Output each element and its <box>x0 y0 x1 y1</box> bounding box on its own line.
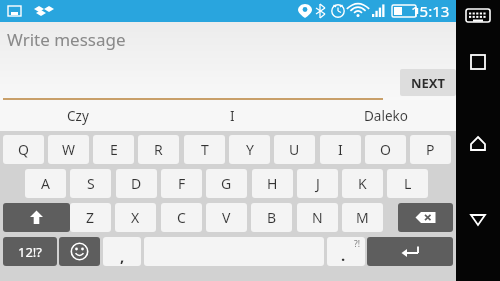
staticText: I <box>230 107 235 125</box>
button[interactable]: P <box>410 135 451 164</box>
staticText: I <box>338 140 343 159</box>
button[interactable]: R <box>138 135 179 164</box>
button[interactable]: G <box>206 169 247 198</box>
staticText: S <box>87 174 95 193</box>
button[interactable]: ?! <box>327 237 365 266</box>
staticText: Y <box>246 140 254 159</box>
staticText: N <box>312 208 323 227</box>
staticText: V <box>222 208 231 227</box>
staticText: X <box>131 208 140 227</box>
button[interactable]: X <box>115 203 156 232</box>
staticText: P <box>426 140 435 159</box>
button[interactable]: Y <box>229 135 270 164</box>
button[interactable]: Z <box>70 203 111 232</box>
button[interactable]: E <box>93 135 134 164</box>
staticText: . <box>341 245 346 265</box>
staticText: 15:13 <box>411 1 450 21</box>
staticText: U <box>289 140 300 159</box>
staticText: M <box>356 208 369 227</box>
button[interactable]: B <box>251 203 292 232</box>
staticText: , <box>120 246 125 266</box>
button[interactable]: U <box>274 135 315 164</box>
staticText: Q <box>18 140 29 159</box>
button[interactable]: H <box>252 169 293 198</box>
button[interactable]: Write message <box>0 22 456 100</box>
button[interactable]: Keyboard <box>463 6 493 28</box>
staticText: Czy <box>67 107 89 125</box>
staticText: W <box>62 140 76 159</box>
staticText: G <box>221 174 232 193</box>
staticText: E <box>110 140 118 159</box>
button[interactable]: S <box>70 169 111 198</box>
button[interactable]: Home <box>466 132 490 156</box>
staticText: R <box>154 140 163 159</box>
button[interactable]: M <box>342 203 383 232</box>
staticText: T <box>201 140 209 159</box>
button[interactable]: A <box>25 169 66 198</box>
staticText: Write message <box>7 28 126 51</box>
staticText: ?! <box>354 238 360 250</box>
button[interactable]: Q <box>3 135 44 164</box>
staticText: Daleko <box>364 107 408 125</box>
button[interactable]: Recents <box>467 51 489 73</box>
button[interactable]: C <box>161 203 202 232</box>
button[interactable]: O <box>365 135 406 164</box>
button[interactable]: 12!? <box>3 237 57 266</box>
button[interactable]: N <box>297 203 338 232</box>
button[interactable]: Backspace <box>398 203 453 232</box>
staticText: Z <box>86 208 95 227</box>
staticText: NEXT <box>411 74 446 92</box>
button[interactable]: Emoji <box>59 237 100 266</box>
button[interactable]: F <box>161 169 202 198</box>
staticText: K <box>358 174 367 193</box>
staticText: F <box>178 174 186 193</box>
button[interactable]: L <box>387 169 428 198</box>
staticText: B <box>267 208 277 227</box>
button[interactable]: Shift <box>3 203 70 232</box>
button[interactable]: I <box>320 135 361 164</box>
staticText: D <box>131 174 142 193</box>
staticText: A <box>41 174 50 193</box>
button[interactable]: T <box>184 135 225 164</box>
button[interactable]: V <box>206 203 247 232</box>
button[interactable]: Enter <box>367 237 453 266</box>
button[interactable]: K <box>342 169 383 198</box>
button[interactable]: NEXT <box>400 69 456 96</box>
staticText: L <box>404 174 412 193</box>
button[interactable]: D <box>116 169 157 198</box>
button[interactable]: , <box>103 237 141 266</box>
button[interactable]: Back <box>467 209 489 231</box>
staticText: H <box>267 174 278 193</box>
staticText: O <box>380 140 391 159</box>
staticText: J <box>316 174 320 193</box>
staticText: C <box>177 208 186 227</box>
button[interactable]: W <box>48 135 89 164</box>
button[interactable]: J <box>297 169 338 198</box>
staticText: 12!? <box>18 243 43 261</box>
